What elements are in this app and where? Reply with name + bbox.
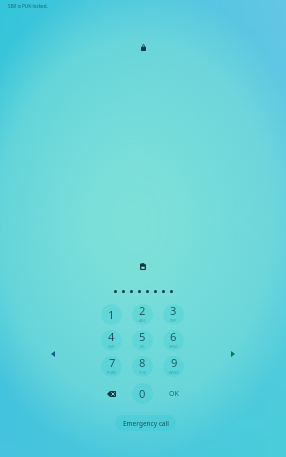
staticText: WXYZ: [169, 370, 179, 375]
staticText: JKL: [140, 344, 146, 349]
staticText: 2: [139, 304, 146, 318]
button[interactable]: Backspace: [101, 383, 122, 404]
button[interactable]: 4: [101, 330, 122, 351]
staticText: Emergency call: [123, 419, 169, 428]
staticText: DEF: [170, 318, 177, 323]
button[interactable]: Emergency call: [115, 415, 176, 431]
button[interactable]: 2: [132, 304, 153, 325]
staticText: 8: [139, 356, 146, 370]
staticText: 0: [139, 386, 146, 401]
staticText: 7: [109, 356, 116, 370]
button[interactable]: 1: [101, 304, 122, 325]
button[interactable]: 8: [132, 356, 153, 377]
staticText: 6: [170, 330, 177, 344]
staticText: SIM is PUK-locked.: [8, 3, 48, 9]
button[interactable]: 6: [163, 330, 184, 351]
staticText: 5: [139, 330, 146, 344]
staticText: TUV: [139, 370, 146, 375]
button[interactable]: Previous: [46, 347, 60, 361]
staticText: PQRS: [107, 370, 117, 375]
staticText: 3: [170, 304, 177, 318]
button[interactable]: 3: [163, 304, 184, 325]
staticText: 1: [108, 307, 115, 322]
staticText: 9: [171, 356, 178, 370]
button[interactable]: 9: [163, 356, 184, 377]
button[interactable]: OK: [163, 383, 184, 404]
button[interactable]: Next: [226, 347, 240, 361]
staticText: OK: [169, 389, 179, 399]
staticText: MNO: [169, 344, 178, 349]
staticText: 4: [108, 330, 115, 344]
button[interactable]: 0: [132, 383, 153, 404]
button[interactable]: 5: [132, 330, 153, 351]
staticText: GHI: [108, 344, 115, 349]
button[interactable]: 7: [101, 356, 122, 377]
staticText: ABC: [139, 318, 146, 323]
